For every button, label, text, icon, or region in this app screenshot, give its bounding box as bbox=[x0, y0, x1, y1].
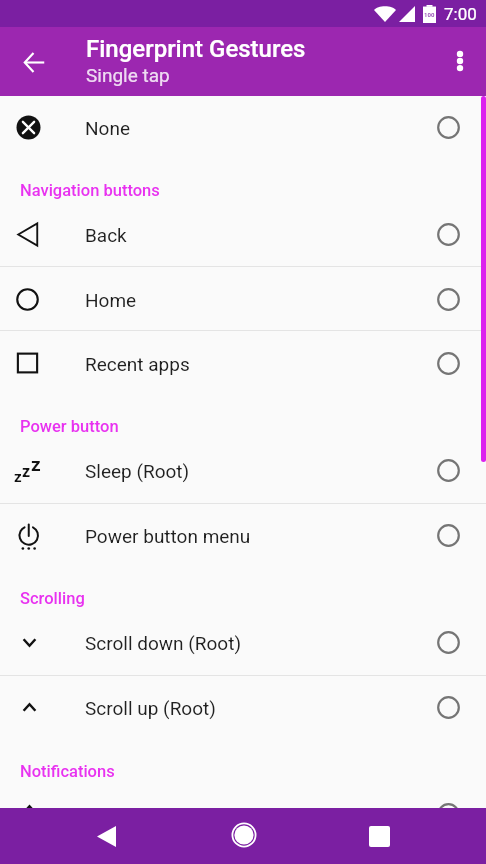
staticText: Scrolling bbox=[20, 589, 85, 608]
button[interactable]: z bbox=[0, 438, 486, 503]
button[interactable]: Recent apps bbox=[355, 808, 403, 864]
staticText: z bbox=[14, 468, 22, 486]
staticText: Notification panel bbox=[85, 804, 235, 826]
staticText: Scroll up (Root) bbox=[85, 697, 216, 719]
staticText: Back bbox=[85, 224, 127, 246]
button[interactable]: Scroll down (Root) bbox=[0, 610, 486, 675]
staticText: z bbox=[22, 462, 31, 481]
staticText: z bbox=[31, 453, 41, 475]
button[interactable]: Home bbox=[220, 808, 268, 864]
button[interactable]: Home bbox=[0, 267, 486, 332]
staticText: Navigation buttons bbox=[20, 181, 160, 200]
button[interactable]: Back bbox=[0, 202, 486, 267]
staticText: Power button menu bbox=[85, 525, 251, 547]
button[interactable]: More options bbox=[436, 37, 484, 85]
button[interactable]: Recent apps bbox=[0, 331, 486, 396]
button[interactable]: None bbox=[0, 95, 486, 160]
staticText: None bbox=[85, 117, 130, 139]
button[interactable]: Navigate up bbox=[10, 38, 58, 86]
staticText: Fingerprint Gestures bbox=[86, 35, 306, 63]
staticText: 7:00 bbox=[444, 4, 477, 24]
staticText: Notifications bbox=[20, 762, 115, 781]
staticText: Sleep (Root) bbox=[85, 460, 190, 482]
staticText: Scroll down (Root) bbox=[85, 632, 242, 654]
staticText: Home bbox=[85, 289, 137, 311]
button[interactable]: Scroll up (Root) bbox=[0, 675, 486, 740]
button[interactable]: Back bbox=[82, 808, 130, 864]
button[interactable]: Power button menu bbox=[0, 503, 486, 568]
staticText: Power button bbox=[20, 417, 119, 436]
staticText: 100 bbox=[424, 11, 435, 18]
staticText: Recent apps bbox=[85, 353, 190, 375]
staticText: Single tap bbox=[86, 64, 170, 86]
button[interactable]: Notification panel bbox=[0, 782, 486, 847]
